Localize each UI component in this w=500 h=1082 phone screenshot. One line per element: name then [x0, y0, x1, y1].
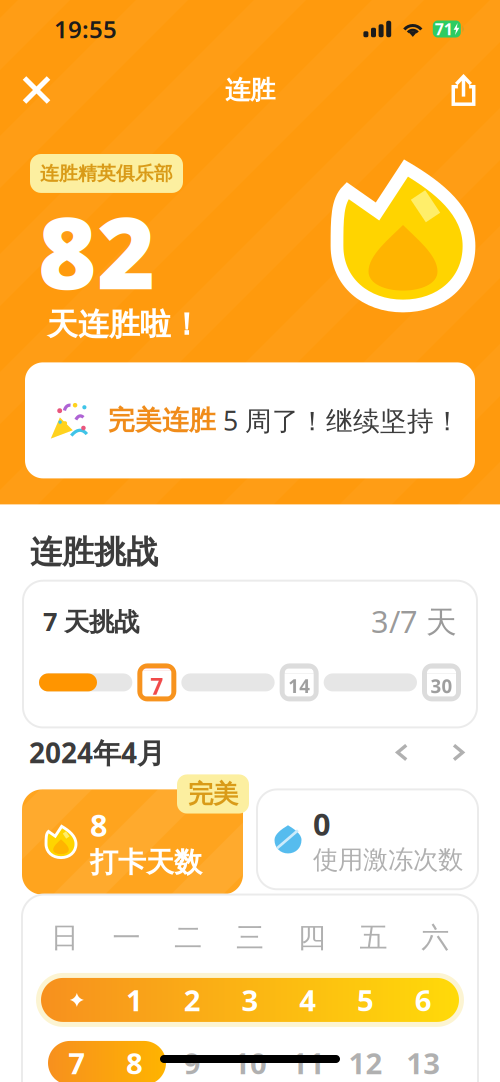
staticText: 三 [236, 920, 264, 955]
staticText: 2 [184, 980, 201, 1019]
staticText: 30 [430, 673, 452, 698]
staticText: 连胜挑战 [30, 532, 158, 572]
staticText: 四 [298, 920, 326, 955]
staticText: 10 [233, 1043, 267, 1082]
staticText: 使用激冻次数 [313, 844, 463, 875]
staticText: 19:55 [54, 13, 117, 45]
staticText: 六 [421, 920, 449, 955]
staticText: 日 [51, 920, 79, 955]
staticText: 连胜精英俱乐部 [40, 162, 173, 185]
staticText: 2024年4月 [29, 734, 165, 771]
staticText: 8 [126, 1043, 143, 1082]
staticText: 5 [357, 980, 374, 1019]
button[interactable]: Close [7, 63, 66, 116]
staticText: 82 [38, 184, 156, 317]
staticText: 5 周了！继续坚持！ [216, 403, 461, 438]
staticText: 完美连胜 [108, 404, 216, 437]
button[interactable]: Share [434, 63, 493, 116]
staticText: 7 天挑战 [43, 604, 139, 638]
staticText: 3/7 天 [371, 601, 457, 641]
staticText: 连胜 [225, 74, 275, 105]
staticText: 二 [174, 920, 202, 955]
staticText: 打卡天数 [90, 845, 202, 879]
staticText: 11 [291, 1043, 325, 1082]
staticText: 完美 [188, 778, 238, 809]
staticText: 13 [406, 1043, 440, 1082]
staticText: 天连胜啦！ [47, 306, 202, 343]
staticText: 14 [288, 673, 310, 698]
staticText: 9 [184, 1043, 201, 1082]
staticText: 8 [90, 804, 108, 845]
staticText: 0 [313, 803, 331, 844]
button[interactable]: Next month [442, 730, 476, 774]
staticText: 6 [415, 980, 432, 1019]
staticText: 71 [435, 18, 453, 40]
staticText: 1 [126, 980, 143, 1019]
staticText: 五 [359, 920, 387, 955]
staticText: 3 [241, 980, 258, 1019]
staticText: 12 [348, 1043, 382, 1082]
staticText: 一 [113, 920, 141, 955]
staticText: 7 [68, 1043, 85, 1082]
staticText: 4 [299, 980, 316, 1019]
button[interactable]: Previous month [385, 730, 420, 774]
staticText: 7 [150, 671, 163, 701]
